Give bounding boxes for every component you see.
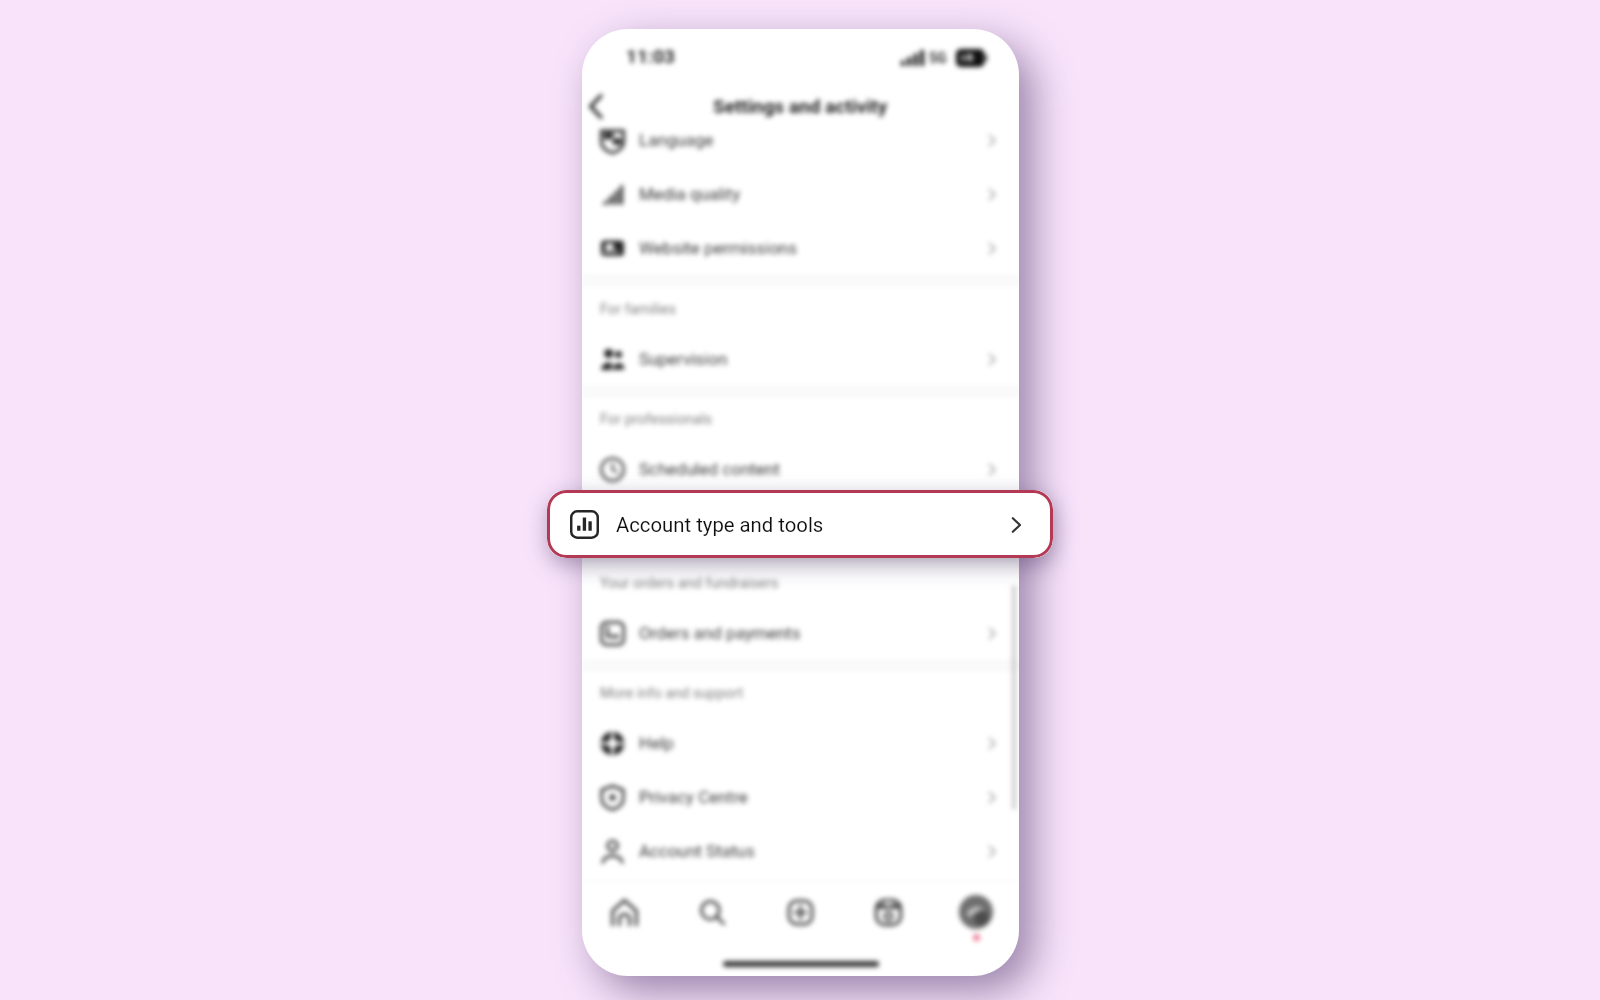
button[interactable]: Supervision [582,332,1019,386]
button[interactable]: Create [778,890,822,934]
button[interactable]: Website permissions [582,221,1019,275]
button[interactable]: Profile [954,890,998,934]
button[interactable]: Help [582,716,1019,770]
button[interactable]: Orders and payments [582,606,1019,660]
button[interactable]: Account Status [582,824,1019,878]
staticText: 5G [929,50,947,66]
button[interactable]: Account type and tools [547,490,1053,558]
button[interactable]: Language [582,113,1019,167]
staticText: Settings and activity [713,95,888,117]
staticText: Account type and tools [616,513,824,537]
staticText: Website permissions [639,238,797,258]
staticText: Account type and tools [639,513,813,533]
staticText: Your orders and fundraisers [600,575,779,592]
staticText: For professionals [600,411,713,428]
button[interactable]: Media quality [582,167,1019,221]
button[interactable]: Reels [866,890,910,934]
button[interactable]: Back [582,84,618,128]
staticText: Supervision [639,349,728,369]
staticText: Scheduled content [639,459,780,479]
button[interactable]: Privacy Centre [582,770,1019,824]
staticText: Account Status [639,841,755,861]
button[interactable]: Home [602,890,646,934]
staticText: Help [639,733,674,753]
button[interactable]: Scheduled content [582,442,1019,496]
staticText: 11:03 [626,45,675,67]
staticText: For families [600,301,677,318]
staticText: More info and support [600,685,744,702]
button[interactable]: Search [690,890,734,934]
staticText: Language [639,130,714,150]
staticText: Privacy Centre [639,787,748,807]
staticText: Orders and payments [639,623,801,643]
button[interactable]: Account type and tools [582,496,1019,550]
staticText: Media quality [639,184,741,204]
